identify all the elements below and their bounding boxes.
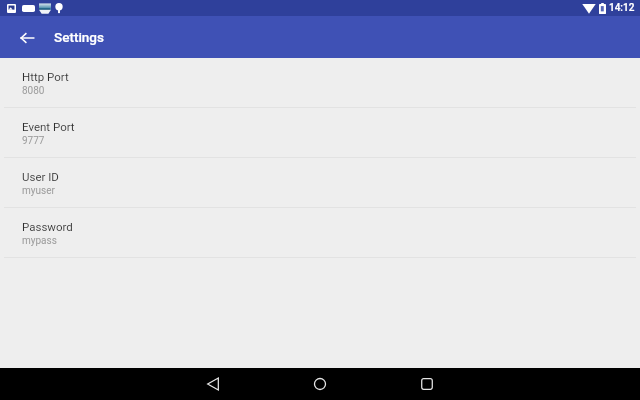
button[interactable]: Navigate up xyxy=(13,24,40,51)
button[interactable]: Password xyxy=(0,208,640,258)
staticText: mypass xyxy=(22,235,57,247)
staticText: Event Port xyxy=(22,120,75,133)
staticText: 8080 xyxy=(22,85,45,97)
staticText: Http Port xyxy=(22,70,69,83)
button[interactable]: Home xyxy=(292,368,348,400)
staticText: myuser xyxy=(22,185,55,197)
staticText: 9777 xyxy=(22,135,45,147)
staticText: 14:12 xyxy=(609,2,635,14)
button[interactable]: Back xyxy=(185,368,241,400)
button[interactable]: Http Port xyxy=(0,58,640,108)
staticText: Settings xyxy=(54,29,104,45)
staticText: Password xyxy=(22,220,73,233)
button[interactable]: Event Port xyxy=(0,108,640,158)
button[interactable]: User ID xyxy=(0,158,640,208)
staticText: User ID xyxy=(22,170,59,183)
button[interactable]: Recent apps xyxy=(399,368,455,400)
